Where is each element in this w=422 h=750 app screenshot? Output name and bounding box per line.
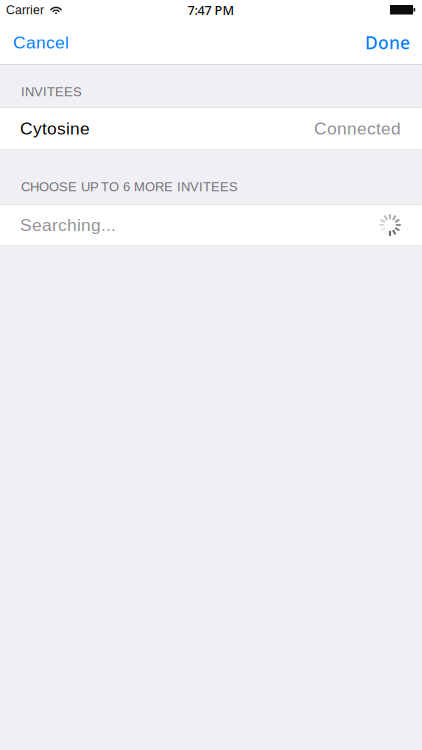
staticText: INVITEES xyxy=(21,84,82,99)
staticText: Connected xyxy=(314,119,401,138)
button[interactable]: Done xyxy=(355,20,422,65)
staticText: Cytosine xyxy=(20,119,90,138)
staticText: Searching... xyxy=(20,215,116,235)
button[interactable]: Cytosine xyxy=(0,107,422,150)
button[interactable]: Searching... xyxy=(0,204,422,246)
staticText: 7:47 PM xyxy=(187,1,234,19)
staticText: CHOOSE UP TO 6 MORE INVITEES xyxy=(21,179,238,194)
button[interactable]: Cancel xyxy=(0,20,79,65)
staticText: Cancel xyxy=(13,33,69,52)
staticText: Carrier xyxy=(6,3,44,17)
staticText: Done xyxy=(365,31,410,54)
